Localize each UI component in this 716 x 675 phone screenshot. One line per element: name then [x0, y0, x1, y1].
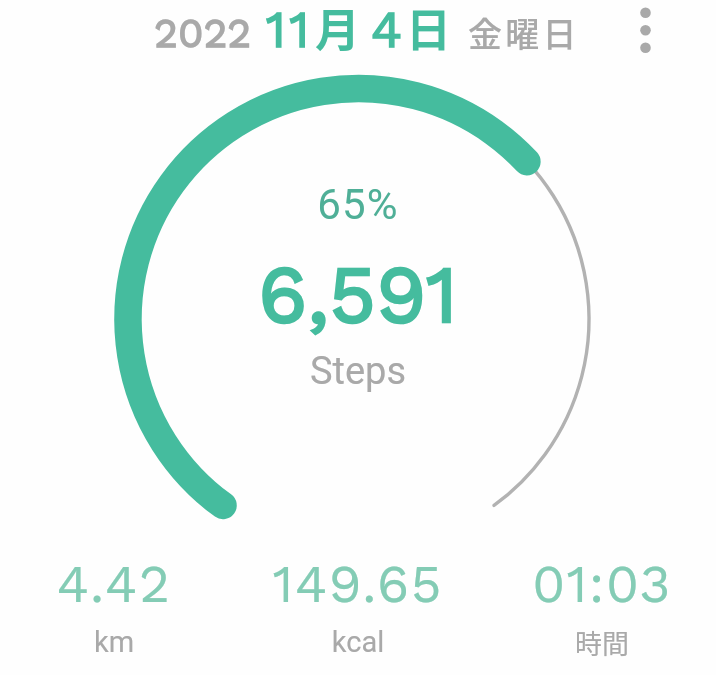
staticText: 6,591 [0, 247, 716, 675]
staticText: 月 [315, 0, 361, 60]
button[interactable]: 01:03 [452, 553, 716, 665]
button[interactable]: 2022 11月 4日 金曜日 [150, 2, 575, 58]
staticText: 2022 [154, 9, 252, 57]
staticText: km [0, 625, 264, 675]
staticText: 149.65 [208, 553, 508, 665]
staticText: 65% [0, 180, 716, 675]
staticText: 11 [266, 0, 314, 60]
staticText: 金曜日 [468, 8, 580, 57]
staticText: 4.42 [0, 553, 264, 665]
staticText: 時間 [452, 623, 716, 675]
staticText: Steps [0, 349, 716, 675]
staticText: 日 [406, 0, 452, 60]
staticText: 01:03 [452, 553, 716, 665]
staticText: kcal [208, 625, 508, 675]
button[interactable]: More options [617, 0, 674, 61]
staticText: 4 [371, 0, 403, 60]
button[interactable]: 149.65 [208, 553, 508, 665]
button[interactable]: 4.42 [0, 553, 264, 665]
